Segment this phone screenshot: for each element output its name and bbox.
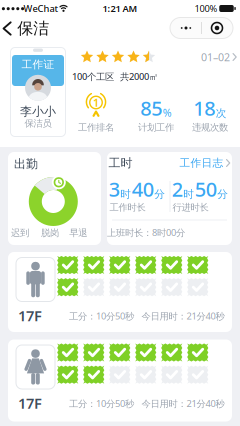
- staticText: 次: [216, 107, 227, 120]
- button[interactable]: Work log: [179, 156, 230, 169]
- staticText: 1:21 AM: [102, 2, 137, 15]
- staticText: 85: [140, 95, 162, 121]
- staticText: 工分：10分50秒: [69, 310, 134, 322]
- staticText: %: [163, 105, 172, 120]
- staticText: 时: [120, 188, 131, 201]
- button[interactable]: Back: [3, 19, 49, 38]
- staticText: 违规次数: [192, 122, 228, 133]
- staticText: 18: [193, 95, 215, 121]
- staticText: 计划工作: [138, 122, 174, 133]
- staticText: 今日用时：21分40秒: [141, 310, 224, 322]
- staticText: 工作日志: [179, 156, 223, 169]
- staticText: 脱岗: [41, 227, 59, 239]
- button[interactable]: More: [172, 18, 200, 38]
- staticText: 上班时长：8时00分: [107, 226, 185, 239]
- staticText: WeChat: [23, 2, 58, 15]
- staticText: 时: [183, 188, 194, 201]
- staticText: 早退: [69, 227, 87, 239]
- staticText: 工作排名: [78, 122, 114, 133]
- staticText: 工作时长: [109, 202, 145, 213]
- staticText: 3: [109, 176, 120, 202]
- staticText: 保洁员: [24, 118, 51, 129]
- staticText: 2: [172, 176, 183, 202]
- staticText: 17F: [18, 306, 42, 325]
- staticText: 1: [93, 95, 99, 110]
- staticText: 01–02: [201, 50, 230, 64]
- staticText: 分: [154, 188, 165, 201]
- staticText: 分: [217, 188, 228, 201]
- staticText: 迟到: [11, 227, 29, 239]
- staticText: 今日用时：21分40秒: [141, 397, 224, 410]
- staticText: 工分：10分50秒: [69, 397, 134, 410]
- staticText: 40: [132, 176, 154, 202]
- staticText: 工作证: [21, 58, 54, 71]
- staticText: 100%: [194, 2, 217, 15]
- staticText: 出勤: [14, 157, 38, 171]
- staticText: 50: [195, 176, 217, 202]
- button[interactable]: Close: [203, 18, 231, 38]
- staticText: 17F: [18, 393, 42, 413]
- staticText: 100个工区 共2000㎡: [72, 70, 158, 83]
- staticText: 李小小: [20, 104, 56, 119]
- button[interactable]: Date range: [201, 50, 237, 64]
- staticText: 行进时长: [172, 202, 208, 213]
- staticText: 保洁: [17, 19, 49, 38]
- staticText: 工时: [108, 156, 132, 170]
